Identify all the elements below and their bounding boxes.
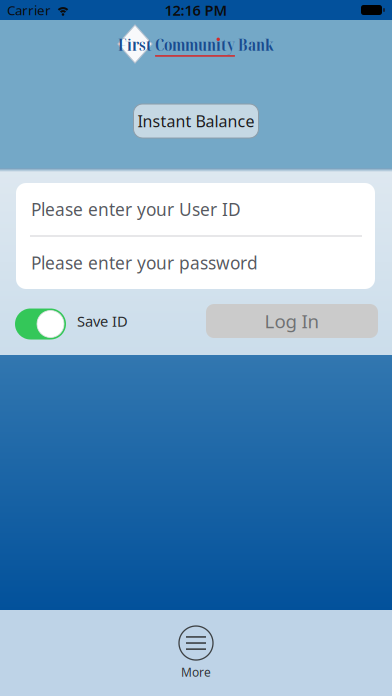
staticText: More — [181, 664, 211, 680]
button[interactable]: Log In — [206, 304, 378, 338]
button[interactable]: Instant Balance — [133, 104, 258, 138]
button[interactable]: Save ID — [15, 308, 66, 339]
staticText: Log In — [264, 309, 319, 333]
staticText: Please enter your password — [31, 251, 258, 274]
button[interactable]: Please enter your password — [16, 236, 375, 289]
staticText: Save ID — [77, 311, 128, 331]
staticText: Instant Balance — [137, 110, 254, 132]
staticText: Community — [155, 33, 235, 56]
staticText: First — [118, 33, 152, 56]
staticText: 12:16 PM — [164, 0, 227, 20]
staticText: Bank — [238, 33, 274, 56]
staticText: Please enter your User ID — [31, 198, 241, 221]
staticText: Carrier — [7, 1, 51, 19]
button[interactable]: More — [179, 626, 213, 680]
button[interactable]: Please enter your User ID — [16, 183, 375, 235]
